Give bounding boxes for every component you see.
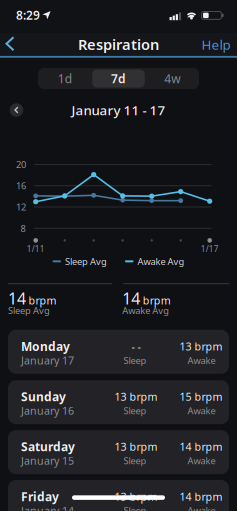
button[interactable]: Monday (8, 330, 229, 374)
staticText: 13 brpm (114, 440, 157, 454)
staticText: 4w (164, 70, 180, 86)
staticText: 8:29 (16, 7, 40, 23)
staticText: Respiration (78, 35, 159, 54)
staticText: Awake (187, 404, 215, 417)
staticText: January 16 (21, 404, 74, 418)
staticText: 1/17 (201, 243, 219, 254)
staticText: 14 brpm (179, 489, 222, 504)
staticText: Sleep (123, 354, 146, 366)
staticText: brpm (143, 293, 171, 307)
staticText: 14 (8, 288, 26, 309)
staticText: Awake Avg (122, 304, 169, 316)
staticText: 15 brpm (179, 390, 222, 404)
staticText: Sleep (123, 454, 146, 467)
staticText: Friday (21, 488, 59, 504)
staticText: 12 (16, 201, 26, 213)
button[interactable]: 4w (146, 68, 199, 89)
staticText: brpm (28, 293, 56, 307)
staticText: 16 (16, 179, 26, 192)
staticText: 8 (20, 222, 25, 234)
staticText: 14 brpm (179, 440, 222, 454)
staticText: Sunday (21, 389, 66, 405)
staticText: Awake (187, 454, 215, 467)
staticText: 1/11 (27, 243, 45, 254)
staticText: 20 (16, 158, 26, 171)
button[interactable]: Sunday (8, 380, 229, 424)
staticText: Awake (187, 504, 215, 511)
button[interactable]: Friday (8, 480, 229, 511)
staticText: Help (201, 36, 230, 53)
staticText: 13 brpm (179, 339, 222, 353)
staticText: Monday (21, 338, 70, 354)
staticText: 13 brpm (114, 390, 157, 404)
staticText: Sleep (123, 504, 146, 511)
staticText: Awake (187, 354, 215, 366)
staticText: Sleep (123, 404, 146, 417)
button[interactable]: 1d (38, 68, 91, 89)
button[interactable]: 7d (92, 68, 145, 89)
staticText: January 11 - 17 (71, 101, 165, 119)
staticText: 14 (122, 288, 140, 309)
staticText: January 14 (21, 503, 74, 511)
staticText: Sleep Avg (65, 255, 107, 267)
staticText: Saturday (21, 439, 75, 455)
staticText: - - (131, 339, 140, 353)
button[interactable]: Back (3, 36, 17, 52)
staticText: Sleep Avg (8, 304, 50, 316)
button[interactable]: Saturday (8, 430, 229, 474)
staticText: 7d (111, 70, 126, 86)
button[interactable]: Help (201, 36, 230, 53)
staticText: 13 brpm (114, 489, 157, 504)
button[interactable]: Previous week (10, 103, 23, 117)
staticText: January 17 (21, 353, 74, 367)
staticText: 1d (58, 70, 72, 86)
staticText: Awake Avg (137, 255, 184, 267)
staticText: January 15 (21, 454, 74, 468)
